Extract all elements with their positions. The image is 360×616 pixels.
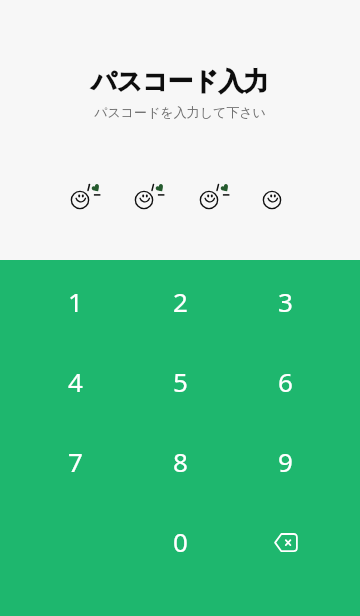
button[interactable]: Delete (233, 501, 338, 581)
staticText: 1 (68, 284, 83, 319)
staticText: 2 (173, 284, 188, 319)
staticText: 9 (278, 444, 293, 479)
staticText: 7 (68, 444, 83, 479)
button[interactable]: 1 (23, 261, 128, 341)
staticText: 6 (278, 364, 293, 399)
button[interactable]: 4 (23, 341, 128, 421)
button[interactable]: 3 (233, 261, 338, 341)
staticText: 3 (278, 284, 293, 319)
staticText: 4 (68, 364, 83, 399)
button[interactable]: 2 (128, 261, 233, 341)
button[interactable]: 7 (23, 421, 128, 501)
button[interactable]: 6 (233, 341, 338, 421)
button[interactable]: 8 (128, 421, 233, 501)
button[interactable]: 5 (128, 341, 233, 421)
button[interactable]: 0 (128, 501, 233, 581)
staticText: 0 (173, 524, 188, 559)
staticText: パスコード入力 (91, 66, 269, 97)
button[interactable]: 9 (233, 421, 338, 501)
staticText: 8 (173, 444, 188, 479)
staticText: 5 (173, 364, 188, 399)
staticText: パスコードを入力して下さい (94, 104, 266, 120)
